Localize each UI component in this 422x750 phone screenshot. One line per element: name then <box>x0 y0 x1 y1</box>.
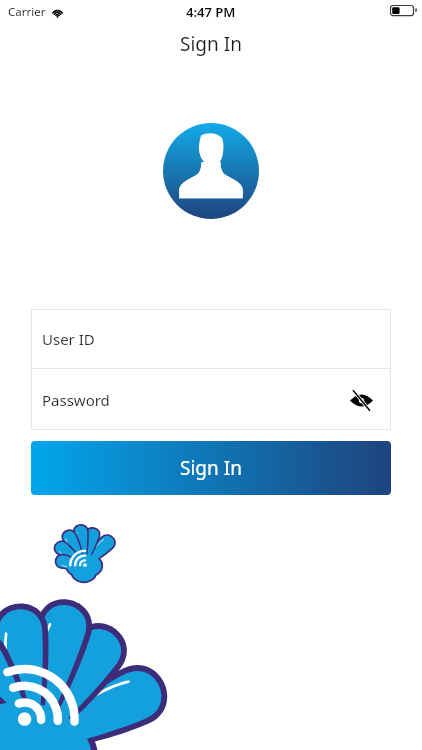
button[interactable]: User ID <box>31 309 391 368</box>
staticText: Password <box>42 390 110 410</box>
button[interactable]: Show password <box>340 379 382 421</box>
staticText: Sign In <box>180 31 242 57</box>
staticText: Carrier <box>8 4 46 20</box>
staticText: Sign In <box>180 455 242 481</box>
button[interactable]: Sign In <box>31 441 391 495</box>
staticText: User ID <box>42 329 95 349</box>
button[interactable]: Password <box>31 369 391 430</box>
staticText: 4:47 PM <box>186 3 236 21</box>
